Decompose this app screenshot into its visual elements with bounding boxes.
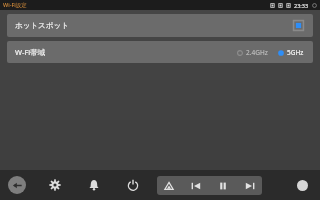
staticText: W-Fi帯域 bbox=[15, 47, 46, 57]
staticText: ホットスポット bbox=[15, 21, 69, 30]
button[interactable]: W-Fi帯域 bbox=[7, 41, 313, 63]
button[interactable]: ホットスポット bbox=[7, 14, 313, 37]
staticText: 23:33 bbox=[294, 2, 309, 9]
button[interactable]: Previous bbox=[189, 179, 203, 193]
button[interactable]: 5GHz bbox=[277, 46, 305, 59]
staticText: 2.4GHz bbox=[246, 48, 268, 57]
button[interactable]: Notifications bbox=[84, 175, 104, 195]
staticText: Wi-Fi設定 bbox=[3, 1, 27, 9]
button[interactable]: 2.4GHz bbox=[236, 46, 269, 59]
staticText: 5GHz bbox=[287, 48, 304, 57]
button[interactable]: Navigation bbox=[162, 179, 176, 193]
button[interactable]: Settings bbox=[45, 175, 65, 195]
button[interactable]: Next bbox=[243, 179, 257, 193]
button[interactable]: Power bbox=[123, 175, 143, 195]
button[interactable]: Pause bbox=[216, 179, 230, 193]
button[interactable]: ホットスポットを有効にする bbox=[292, 19, 305, 32]
button[interactable]: Back bbox=[8, 176, 26, 194]
button[interactable]: Record bbox=[294, 177, 310, 193]
